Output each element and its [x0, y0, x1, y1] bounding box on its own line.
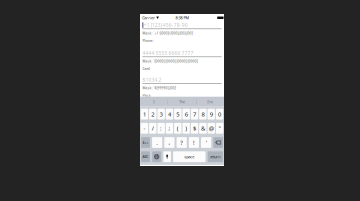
staticText: , — [168, 138, 170, 146]
staticText: 7 — [193, 110, 196, 118]
staticText: : — [160, 124, 162, 132]
staticText: ! — [193, 138, 195, 146]
staticText: 3 — [160, 110, 163, 118]
button[interactable]: ABC — [141, 151, 150, 162]
staticText: ABC — [142, 155, 148, 159]
button[interactable]: 5 — [174, 109, 181, 119]
staticText: 9 — [210, 110, 213, 118]
staticText: I — [153, 99, 154, 104]
button[interactable]: return — [208, 151, 223, 162]
staticText: ( — [177, 124, 179, 132]
button[interactable]: Next keyboard — [152, 151, 161, 162]
staticText: Mask: '+1 ([000]) [000]-[00]-[00]' — [142, 31, 193, 35]
button[interactable]: I'm — [196, 97, 224, 107]
button[interactable]: Delete — [213, 137, 223, 148]
staticText: Card: — [142, 66, 150, 71]
staticText: $1034.2 — [142, 77, 161, 83]
staticText: The — [179, 99, 185, 104]
button[interactable]: ( — [174, 123, 181, 134]
button[interactable]: 3 — [157, 109, 165, 119]
button[interactable]: ! — [189, 137, 199, 148]
staticText: ' — [206, 138, 207, 146]
staticText: +1 (123) 456-78-90 — [144, 22, 188, 28]
button[interactable]: : — [157, 123, 165, 134]
staticText: & — [201, 124, 205, 132]
staticText: I'm — [207, 99, 213, 104]
staticText: return — [210, 154, 220, 159]
staticText: " — [219, 124, 221, 132]
button[interactable]: 9 — [207, 109, 215, 119]
staticText: 0 — [218, 110, 221, 118]
button[interactable]: ' — [201, 137, 211, 148]
staticText: #+= — [142, 140, 148, 145]
staticText: 4 — [168, 110, 171, 118]
button[interactable]: 6 — [182, 109, 190, 119]
staticText: 1 — [143, 110, 146, 118]
button[interactable]: , — [164, 137, 174, 148]
staticText: / — [152, 124, 154, 132]
staticText: Carrier — [142, 15, 155, 20]
staticText: space — [184, 154, 194, 159]
button[interactable]: . — [152, 137, 162, 148]
staticText: 8 — [201, 110, 204, 118]
staticText: . — [156, 138, 158, 146]
button[interactable]: @ — [207, 123, 215, 134]
button[interactable]: / — [149, 123, 156, 134]
button[interactable]: $ — [191, 123, 198, 134]
button[interactable]: space — [173, 151, 205, 162]
button[interactable]: Dictate — [163, 151, 171, 162]
staticText: 8:38 PM — [175, 15, 188, 20]
staticText: ? — [180, 138, 183, 146]
button[interactable]: ; — [166, 123, 173, 134]
staticText: $ — [193, 124, 196, 132]
button[interactable]: 1 — [141, 109, 148, 119]
button[interactable]: ? — [176, 137, 187, 148]
button[interactable]: " — [216, 123, 223, 134]
button[interactable]: I — [140, 97, 168, 107]
staticText: 2 — [151, 110, 154, 118]
button[interactable]: The — [168, 97, 196, 107]
staticText: Phone: — [142, 38, 153, 43]
button[interactable]: ) — [182, 123, 190, 134]
staticText: @ — [209, 124, 214, 132]
button[interactable]: & — [199, 123, 207, 134]
staticText: Mask: '[0000] [0000] [0000] [0000]' — [142, 59, 198, 63]
button[interactable]: #+= — [141, 137, 150, 148]
staticText: ) — [185, 124, 187, 132]
staticText: ; — [168, 124, 170, 132]
staticText: 4444 5555 6666 7777 — [142, 50, 193, 56]
staticText: 5 — [176, 110, 179, 118]
button[interactable]: 7 — [191, 109, 198, 119]
button[interactable]: 8 — [199, 109, 207, 119]
button[interactable]: 2 — [149, 109, 156, 119]
staticText: Price: — [142, 93, 151, 98]
button[interactable]: 0 — [216, 109, 223, 119]
staticText: Mask: '$[99990].[00]' — [142, 86, 176, 90]
staticText: 6 — [185, 110, 188, 118]
staticText: - — [143, 124, 145, 132]
button[interactable]: - — [141, 123, 148, 134]
button[interactable]: 4 — [166, 109, 173, 119]
